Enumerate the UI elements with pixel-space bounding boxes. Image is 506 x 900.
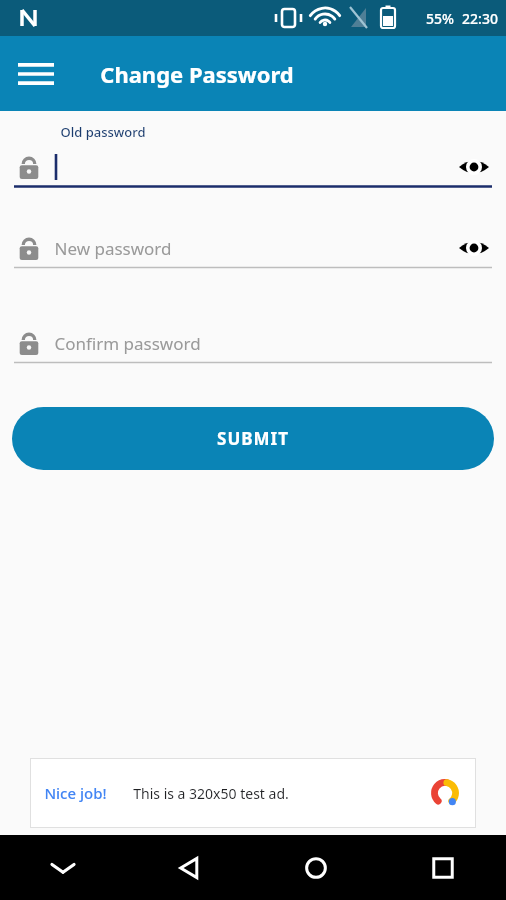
button[interactable]: Toggle password visibility <box>456 230 492 266</box>
button[interactable]: Open navigation menu <box>8 46 64 102</box>
staticText: Confirm password <box>54 332 201 355</box>
staticText: 55% <box>426 9 454 28</box>
button[interactable]: Toggle password visibility <box>456 149 492 185</box>
staticText: New password <box>54 237 172 260</box>
button[interactable]: Home <box>252 835 379 900</box>
button[interactable]: Back <box>126 835 252 900</box>
button[interactable]: Recent apps <box>379 835 506 900</box>
staticText: 22:30 <box>462 9 498 28</box>
button[interactable]: Hide keyboard <box>0 835 126 900</box>
staticText: Old password <box>60 123 146 141</box>
staticText: SUBMIT <box>217 427 289 450</box>
button[interactable]: Nice job! <box>30 758 476 828</box>
staticText: Nice job! <box>44 783 107 803</box>
staticText: Change Password <box>100 59 294 89</box>
staticText: This is a 320x50 test ad. <box>133 784 289 803</box>
button[interactable]: SUBMIT <box>12 407 494 470</box>
